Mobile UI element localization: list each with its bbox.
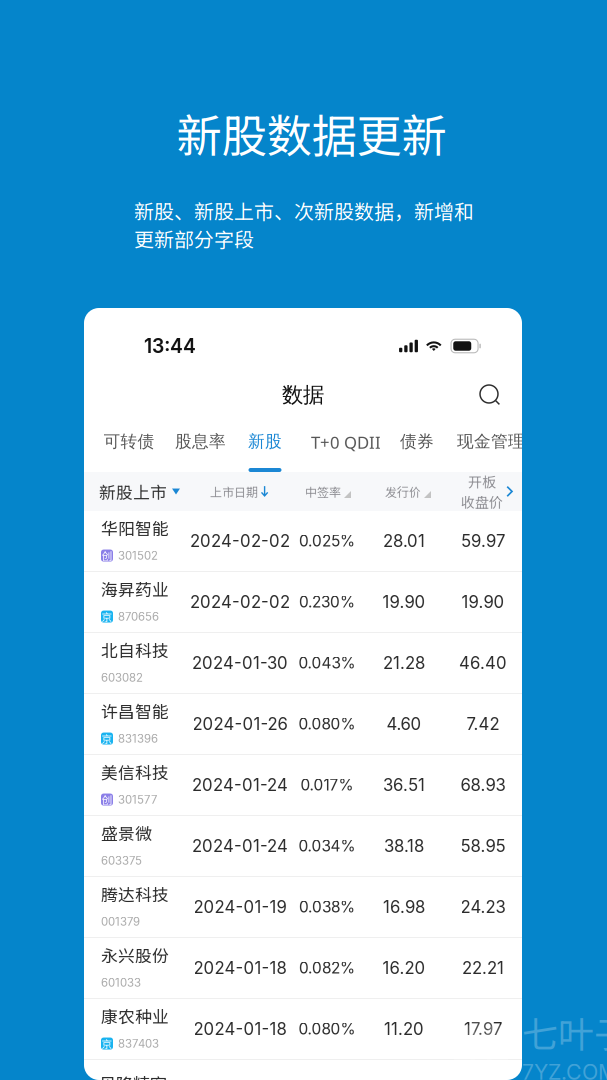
staticText: 华阳智能 — [101, 516, 169, 540]
staticText: T+0 QDII — [311, 431, 381, 454]
staticText: 2024-01-26 — [192, 714, 287, 734]
staticText: 19.90 — [461, 592, 504, 612]
staticText: 2024-01-18 — [193, 958, 286, 978]
staticText: 603375 — [101, 854, 142, 867]
staticText: 创 — [101, 548, 112, 563]
button[interactable]: 北自科技 — [84, 633, 522, 694]
staticText: 京 — [101, 731, 112, 746]
staticText: 现金管理 — [457, 431, 525, 452]
staticText: 2024-01-18 — [193, 1019, 286, 1039]
staticText: 京 — [101, 609, 112, 624]
staticText: 11.20 — [384, 1019, 424, 1039]
staticText: 0.025% — [299, 532, 355, 550]
staticText: 上市日期 — [210, 483, 258, 500]
staticText: 可转债 — [103, 431, 154, 452]
staticText: 美信科技 — [101, 760, 169, 784]
staticText: 贝隆精密 — [99, 1071, 167, 1080]
button[interactable]: 腾达科技 — [84, 877, 522, 938]
staticText: 28.01 — [383, 531, 425, 551]
button[interactable]: 新股上市 — [84, 472, 190, 511]
staticText: 603082 — [101, 671, 143, 684]
staticText: 发行价 — [385, 483, 421, 500]
staticText: 0.034% — [298, 837, 355, 855]
staticText: 开板 — [468, 471, 496, 491]
staticText: 68.93 — [460, 775, 505, 795]
button[interactable]: 新股 — [227, 420, 284, 472]
staticText: 19.90 — [382, 592, 425, 612]
staticText: 59.97 — [461, 531, 505, 551]
staticText: 0.080% — [298, 715, 355, 733]
button[interactable]: 搜索 — [474, 379, 506, 411]
button[interactable]: 许昌智能 — [84, 694, 522, 755]
button[interactable]: T+0 QDII — [284, 420, 382, 472]
staticText: 4.60 — [386, 714, 421, 734]
staticText: 0.038% — [299, 898, 355, 916]
staticText: 38.18 — [384, 836, 424, 856]
staticText: 16.98 — [383, 897, 425, 917]
staticText: 301577 — [118, 793, 157, 806]
staticText: 数据 — [282, 382, 324, 408]
staticText: 2024-01-24 — [192, 836, 288, 856]
button[interactable]: 美信科技 — [84, 755, 522, 816]
staticText: 永兴股份 — [101, 943, 169, 967]
staticText: 001379 — [101, 915, 140, 928]
staticText: 新股数据更新 — [176, 100, 446, 166]
staticText: 2024-02-02 — [190, 531, 290, 551]
button[interactable]: 上市日期 — [190, 471, 289, 511]
staticText: 13:44 — [144, 334, 196, 358]
staticText: 七叶子 — [522, 1006, 607, 1058]
staticText: 0.017% — [300, 776, 353, 794]
button[interactable]: 盛景微 — [84, 816, 522, 877]
button[interactable]: 发行价 — [367, 471, 449, 511]
staticText: 许昌智能 — [101, 699, 169, 723]
staticText: 0.230% — [299, 593, 355, 611]
staticText: 2024-01-19 — [193, 897, 286, 917]
button[interactable]: 开板 — [449, 472, 522, 511]
staticText: 46.40 — [459, 653, 507, 673]
staticText: 创 — [101, 792, 112, 807]
button[interactable]: 现金管理 — [434, 420, 526, 472]
staticText: 新股上市 — [99, 479, 167, 503]
staticText: 870656 — [118, 610, 159, 623]
staticText: 北自科技 — [101, 638, 169, 662]
staticText: 831396 — [118, 732, 158, 745]
staticText: 债券 — [400, 431, 434, 452]
staticText: 海昇药业 — [101, 577, 169, 601]
staticText: 新股、新股上市、次新股数据，新增和 — [134, 196, 474, 225]
staticText: 601033 — [101, 976, 141, 989]
staticText: 36.51 — [383, 775, 425, 795]
staticText: 收盘价 — [461, 491, 503, 512]
staticText: 京 — [101, 1036, 112, 1051]
staticText: 腾达科技 — [101, 882, 169, 906]
staticText: 17.97 — [464, 1019, 502, 1039]
button[interactable]: 华阳智能 — [84, 511, 522, 572]
button[interactable]: 债券 — [382, 420, 434, 472]
staticText: 更新部分字段 — [134, 224, 254, 253]
staticText: 7YZ.COM — [522, 1059, 607, 1080]
staticText: 22.21 — [462, 958, 504, 978]
button[interactable]: 永兴股份 — [84, 938, 522, 999]
staticText: 837403 — [118, 1037, 159, 1050]
staticText: 2024-01-30 — [192, 653, 288, 673]
staticText: 2024-02-02 — [190, 592, 290, 612]
staticText: 7.42 — [466, 714, 499, 734]
button[interactable]: 可转债 — [103, 420, 155, 472]
staticText: 中签率 — [305, 483, 341, 500]
button[interactable]: 中签率 — [289, 471, 367, 511]
staticText: 新股 — [248, 431, 282, 452]
staticText: 康农种业 — [101, 1004, 169, 1028]
staticText: 2024-01-24 — [192, 775, 288, 795]
staticText: 0.080% — [298, 1020, 355, 1038]
staticText: 58.95 — [460, 836, 505, 856]
button[interactable]: 康农种业 — [84, 999, 522, 1060]
button[interactable]: 股息率 — [155, 420, 227, 472]
staticText: 0.043% — [298, 654, 355, 672]
staticText: 21.28 — [383, 653, 425, 673]
staticText: 301502 — [118, 549, 158, 562]
button[interactable]: 海昇药业 — [84, 572, 522, 633]
staticText: 16.20 — [382, 958, 425, 978]
staticText: 0.082% — [299, 959, 355, 977]
staticText: 股息率 — [175, 431, 226, 452]
staticText: 24.23 — [460, 897, 505, 917]
staticText: 盛景微 — [101, 821, 152, 845]
